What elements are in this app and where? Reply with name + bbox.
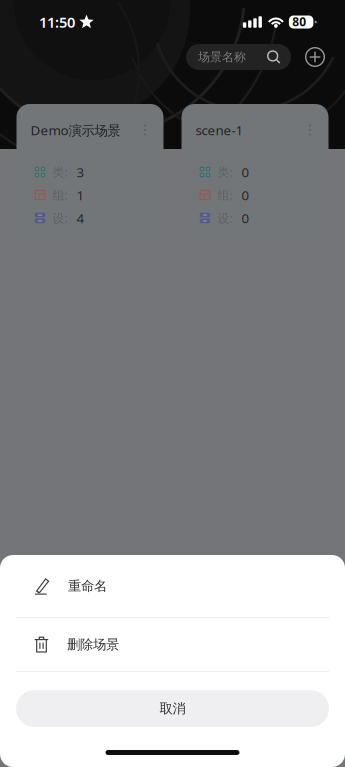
- button[interactable]: Demo演示场景: [16, 104, 163, 245]
- staticText: 组:: [52, 187, 67, 203]
- staticText: 类:: [217, 164, 232, 180]
- button[interactable]: 场景名称: [186, 44, 291, 70]
- staticText: Demo演示场景: [30, 121, 120, 139]
- button[interactable]: scene-1: [181, 104, 328, 245]
- staticText: 3: [76, 163, 84, 181]
- staticText: 组:: [217, 187, 232, 203]
- staticText: 0: [241, 163, 249, 181]
- button[interactable]: Add scene: [302, 44, 328, 70]
- staticText: 类:: [52, 164, 67, 180]
- staticText: 设:: [217, 210, 232, 226]
- staticText: 场景名称: [198, 50, 246, 64]
- staticText: 设:: [52, 210, 67, 226]
- staticText: 1: [76, 186, 84, 204]
- staticText: 0: [241, 186, 249, 204]
- staticText: 0: [241, 209, 249, 227]
- button[interactable]: 取消: [16, 690, 329, 727]
- staticText: 取消: [159, 700, 185, 717]
- staticText: 80: [292, 14, 306, 30]
- button[interactable]: 重命名: [0, 555, 345, 617]
- staticText: scene-1: [195, 121, 243, 139]
- staticText: 删除场景: [67, 636, 119, 653]
- staticText: 4: [76, 209, 84, 227]
- button[interactable]: 删除场景: [0, 618, 345, 671]
- staticText: 11:50: [39, 12, 75, 32]
- staticText: 重命名: [68, 578, 107, 594]
